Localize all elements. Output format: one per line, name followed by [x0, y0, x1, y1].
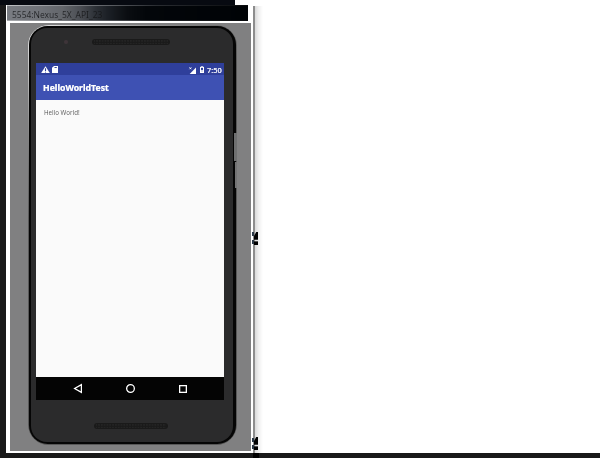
staticText: 5554:Nexus_5X_API_23: [12, 9, 103, 21]
button[interactable]: Back: [65, 377, 90, 400]
staticText: 7:50: [207, 65, 222, 75]
staticText: Hello World!: [44, 108, 80, 116]
staticText: HelloWorldTest: [43, 82, 109, 94]
button[interactable]: Recent apps: [170, 377, 195, 400]
button[interactable]: Home: [118, 377, 143, 400]
